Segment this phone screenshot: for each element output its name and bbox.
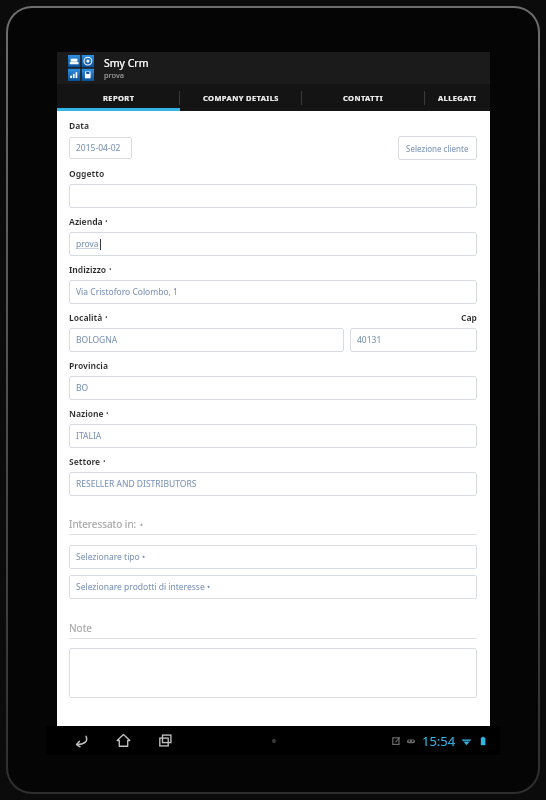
staticText: • [140, 519, 144, 530]
staticText: BOLOGNA [76, 334, 118, 346]
button[interactable]: Smy Crm [57, 52, 490, 84]
staticText: 15:54 [422, 732, 456, 750]
staticText: prova [76, 238, 99, 250]
button[interactable] [69, 648, 477, 698]
button[interactable]: ITALIA [69, 424, 477, 448]
staticText: Data [69, 120, 90, 132]
staticText: Note [69, 621, 92, 635]
staticText: RESELLER AND DISTRIBUTORS [76, 478, 197, 490]
button[interactable]: 40131 [350, 328, 477, 352]
button[interactable]: Via Cristoforo Colombo, 1 [69, 280, 477, 304]
staticText: Cap [461, 312, 477, 324]
staticText: Oggetto [69, 168, 105, 180]
staticText: 2015-04-02 [76, 142, 121, 154]
staticText: • [105, 313, 108, 323]
button[interactable]: prova [69, 232, 477, 256]
staticText: Selezionare tipo • [76, 551, 146, 563]
staticText: prova [104, 70, 124, 80]
button[interactable]: BOLOGNA [69, 328, 344, 352]
staticText: CONTATTI [343, 93, 384, 103]
button[interactable] [69, 184, 477, 208]
staticText: • [103, 457, 106, 467]
staticText: Località [69, 312, 103, 324]
staticText: Settore [69, 456, 101, 468]
staticText: Smy Crm [104, 56, 149, 70]
button[interactable]: BO [69, 376, 477, 400]
button[interactable]: Selezionare prodotti di interesse • [69, 575, 477, 599]
button[interactable]: COMPANY DETAILS [180, 84, 302, 111]
staticText: Interessato in: [69, 517, 137, 531]
button[interactable]: Selezionare tipo • [69, 545, 477, 569]
staticText: Via Cristoforo Colombo, 1 [76, 286, 178, 298]
staticText: • [109, 265, 112, 275]
staticText: BO [76, 382, 89, 394]
staticText: Nazione [69, 408, 104, 420]
staticText: Selezionare prodotti di interesse • [76, 581, 211, 593]
staticText: • [106, 409, 109, 419]
staticText: Provincia [69, 360, 108, 372]
staticText: ALLEGATI [438, 93, 477, 103]
staticText: Azienda [69, 216, 103, 228]
button[interactable]: 2015-04-02 [69, 137, 132, 159]
button[interactable]: Home [108, 726, 138, 755]
button[interactable]: Selezione cliente [398, 136, 477, 160]
button[interactable]: Back [66, 726, 96, 755]
button[interactable]: REPORT [57, 84, 180, 111]
button[interactable]: RESELLER AND DISTRIBUTORS [69, 472, 477, 496]
button[interactable]: ALLEGATI [425, 84, 490, 111]
staticText: Indizizzo [69, 264, 107, 276]
staticText: ITALIA [76, 430, 102, 442]
button[interactable]: CONTATTI [302, 84, 425, 111]
staticText: 40131 [357, 334, 382, 346]
staticText: COMPANY DETAILS [203, 93, 279, 103]
staticText: REPORT [103, 93, 135, 103]
staticText: Selezione cliente [406, 143, 469, 154]
staticText: • [105, 217, 108, 227]
button[interactable]: Recent apps [150, 726, 180, 755]
